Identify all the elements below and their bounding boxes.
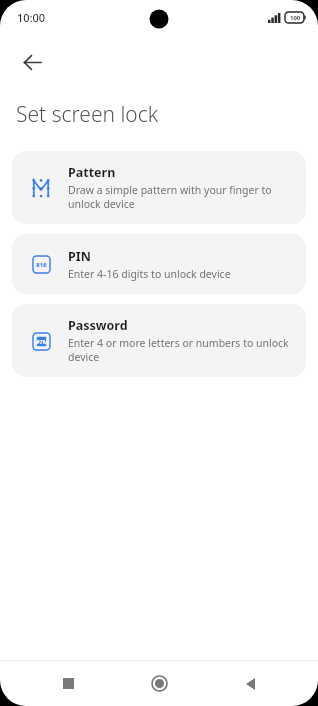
staticText: Pattern: [68, 164, 116, 181]
button[interactable]: Pattern: [12, 151, 306, 224]
staticText: Draw a simple pattern with your finger t…: [68, 183, 292, 211]
staticText: #7M: [36, 338, 48, 345]
button[interactable]: #7M: [12, 304, 306, 377]
button[interactable]: 816: [12, 234, 306, 294]
staticText: Password: [68, 317, 128, 334]
staticText: 100: [290, 14, 301, 22]
button[interactable]: Back: [227, 661, 273, 706]
staticText: 816: [36, 261, 47, 269]
button[interactable]: Home: [136, 661, 182, 706]
staticText: Enter 4-16 digits to unlock device: [68, 267, 231, 281]
button[interactable]: Recent apps: [45, 661, 91, 706]
staticText: Enter 4 or more letters or numbers to un…: [68, 336, 292, 364]
staticText: 10:00: [17, 10, 46, 25]
button[interactable]: Back: [10, 40, 54, 84]
staticText: PIN: [68, 248, 91, 265]
staticText: Set screen lock: [16, 100, 159, 129]
